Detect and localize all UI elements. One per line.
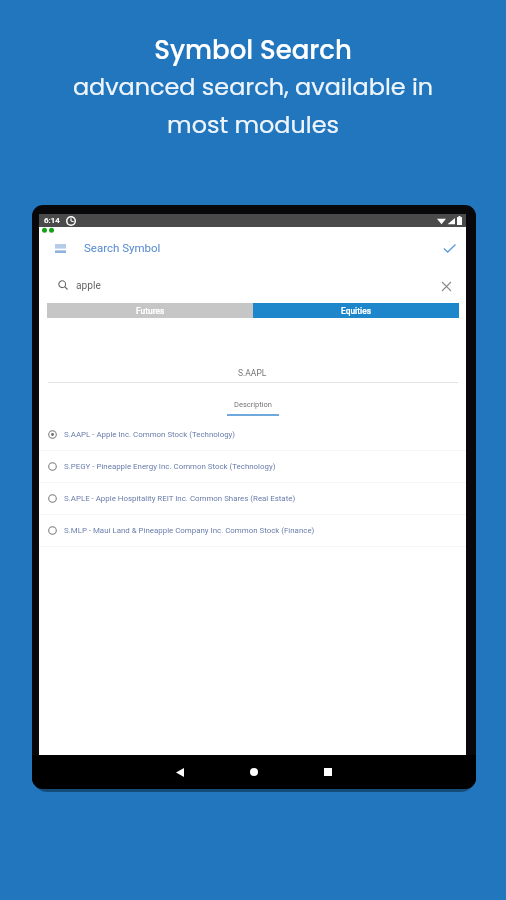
- button[interactable]: Recents: [311, 755, 345, 789]
- staticText: S.PEGY - Pineapple Energy Inc. Common St…: [64, 462, 276, 471]
- staticText: apple: [76, 280, 101, 292]
- staticText: S.MLP - Maui Land & Pineapple Company In…: [64, 526, 315, 535]
- button[interactable]: Menu: [48, 236, 72, 260]
- staticText: S.AAPL - Apple Inc. Common Stock (Techno…: [64, 430, 236, 439]
- staticText: 6:14: [44, 216, 60, 225]
- button[interactable]: Futures: [47, 303, 253, 318]
- staticText: S.AAPL: [238, 368, 267, 378]
- button[interactable]: S.MLP - Maui Land & Pineapple Company In…: [39, 515, 466, 546]
- button[interactable]: Clear search: [435, 275, 457, 297]
- button[interactable]: S.APLE - Apple Hospitality REIT Inc. Com…: [39, 483, 466, 514]
- staticText: S.APLE - Apple Hospitality REIT Inc. Com…: [64, 494, 296, 503]
- staticText: advanced search, available in most modul…: [0, 70, 506, 141]
- button[interactable]: Home: [237, 755, 271, 789]
- staticText: Symbol Search: [154, 32, 352, 68]
- staticText: Futures: [136, 306, 165, 316]
- button[interactable]: Back: [163, 755, 197, 789]
- staticText: Description: [234, 400, 272, 409]
- staticText: Equities: [341, 306, 372, 316]
- button[interactable]: S.PEGY - Pineapple Energy Inc. Common St…: [39, 451, 466, 482]
- button[interactable]: Equities: [253, 303, 459, 318]
- button[interactable]: Confirm: [437, 236, 461, 260]
- button[interactable]: S.AAPL - Apple Inc. Common Stock (Techno…: [39, 419, 466, 450]
- staticText: Search Symbol: [84, 241, 161, 254]
